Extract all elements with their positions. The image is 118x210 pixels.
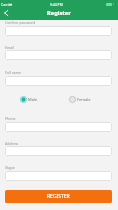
button[interactable] — [5, 76, 112, 86]
staticText: Full name — [5, 70, 22, 75]
button[interactable]: Male — [20, 96, 38, 103]
staticText: Female — [77, 97, 91, 102]
button[interactable] — [5, 146, 112, 156]
staticText: Male — [28, 97, 38, 102]
staticText: Carrier — [1, 2, 13, 7]
staticText: Phone — [5, 116, 16, 121]
button[interactable]: Female — [69, 96, 91, 103]
button[interactable] — [5, 171, 112, 181]
staticText: Email — [5, 45, 14, 50]
staticText: Address — [5, 141, 19, 146]
staticText: 9:44 PM — [50, 2, 63, 7]
button[interactable] — [5, 26, 112, 36]
staticText: Register — [47, 9, 71, 17]
button[interactable] — [5, 122, 112, 132]
staticText: Skype — [5, 165, 15, 170]
staticText: Confirm password — [5, 20, 36, 25]
button[interactable]: REGISTER — [5, 190, 112, 203]
button[interactable]: Back — [0, 7, 11, 18]
staticText: REGISTER — [47, 193, 70, 200]
button[interactable] — [5, 50, 112, 60]
